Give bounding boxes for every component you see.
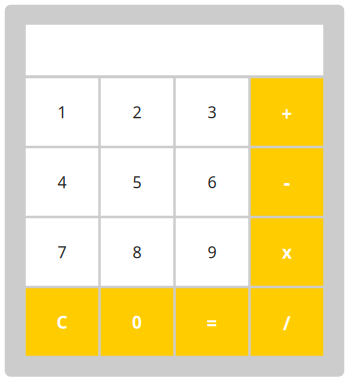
- staticText: 7: [57, 241, 66, 263]
- staticText: C: [56, 310, 67, 333]
- button[interactable]: Plus: [251, 78, 323, 146]
- button[interactable]: 3: [176, 78, 248, 146]
- button[interactable]: 0: [101, 288, 173, 356]
- staticText: 1: [57, 101, 66, 123]
- button[interactable]: Multiply: [251, 218, 323, 286]
- button[interactable]: Minus: [251, 148, 323, 216]
- staticText: 6: [207, 171, 216, 193]
- button[interactable]: 9: [176, 218, 248, 286]
- staticText: -: [283, 167, 290, 196]
- button[interactable]: Equals: [176, 288, 248, 356]
- staticText: 9: [207, 241, 216, 263]
- staticText: 3: [207, 101, 216, 123]
- staticText: =: [206, 311, 217, 335]
- button[interactable]: 6: [176, 148, 248, 216]
- button[interactable]: 2: [101, 78, 173, 146]
- staticText: 2: [132, 101, 141, 123]
- staticText: 0: [132, 310, 142, 333]
- button[interactable]: 4: [26, 148, 98, 216]
- button[interactable]: 1: [26, 78, 98, 146]
- staticText: /: [283, 311, 291, 335]
- staticText: 8: [132, 241, 141, 263]
- button[interactable]: Divide: [251, 288, 323, 356]
- staticText: x: [282, 240, 292, 263]
- button[interactable]: 8: [101, 218, 173, 286]
- button[interactable]: Clear: [26, 288, 98, 356]
- button[interactable]: 5: [101, 148, 173, 216]
- staticText: 4: [57, 171, 66, 193]
- staticText: +: [281, 101, 292, 126]
- button[interactable]: 7: [26, 218, 98, 286]
- staticText: 5: [132, 171, 141, 193]
